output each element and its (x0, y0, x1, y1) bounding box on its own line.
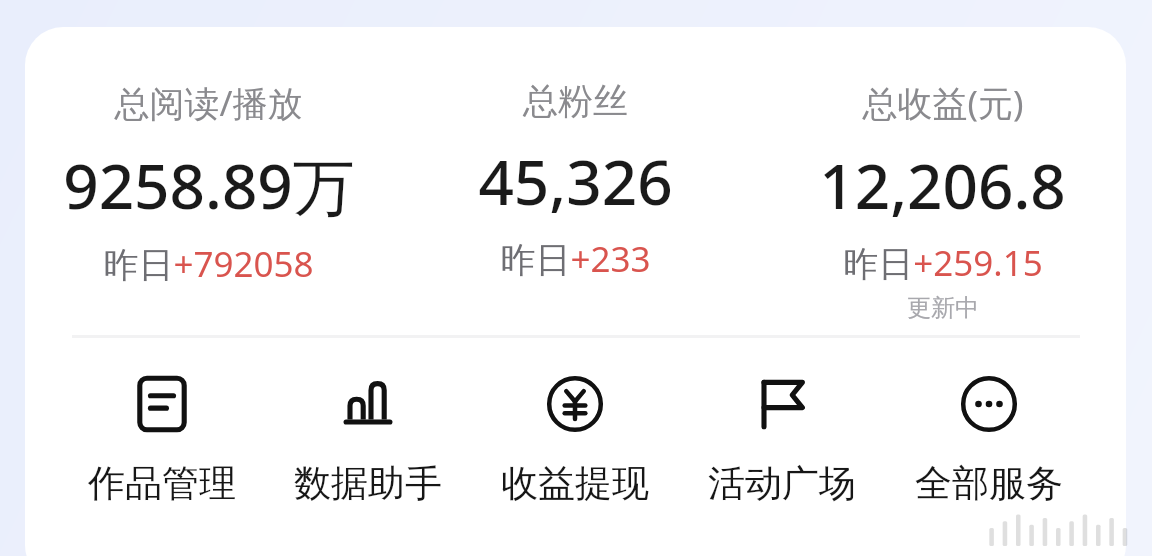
staticText: 昨日+233 (500, 235, 651, 283)
staticText: 更新中 (907, 293, 979, 323)
button[interactable]: 收益提现 (471, 374, 678, 507)
staticText: 数据助手 (294, 460, 442, 507)
staticText: 9258.89万 (63, 143, 355, 228)
staticText: 昨日+792058 (103, 240, 314, 288)
button[interactable]: 总粉丝 (392, 79, 759, 283)
staticText: 总阅读/播放 (114, 79, 303, 127)
staticText: 昨日+259.15 (843, 239, 1043, 287)
staticText: 总收益(元) (862, 79, 1024, 127)
button[interactable]: 全部服务 (885, 374, 1092, 507)
staticText: 作品管理 (88, 460, 236, 507)
staticText: 12,206.8 (819, 143, 1066, 227)
button[interactable]: 作品管理 (59, 374, 265, 507)
button[interactable]: 总收益(元) (759, 79, 1126, 323)
staticText: 总粉丝 (523, 79, 628, 123)
button[interactable]: 总阅读/播放 (25, 79, 392, 288)
staticText: 全部服务 (915, 460, 1063, 507)
staticText: 收益提现 (501, 460, 649, 507)
staticText: 45,326 (478, 139, 673, 223)
staticText: 活动广场 (708, 460, 856, 507)
button[interactable]: 活动广场 (678, 374, 885, 507)
button[interactable]: 数据助手 (265, 374, 471, 507)
